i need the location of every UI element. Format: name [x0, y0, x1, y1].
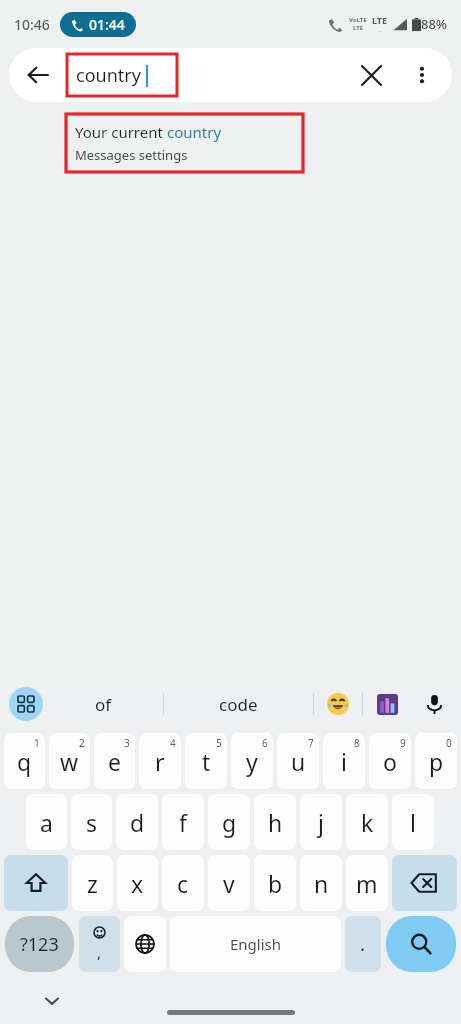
staticText: n: [314, 868, 329, 899]
button[interactable]: English: [170, 916, 341, 972]
button[interactable]: Emoji: [314, 678, 362, 730]
staticText: g: [222, 807, 237, 838]
button[interactable]: Emoji and comma: [79, 916, 120, 972]
button[interactable]: v: [208, 855, 250, 911]
button[interactable]: n: [300, 855, 342, 911]
staticText: p: [429, 746, 444, 777]
staticText: 8: [354, 736, 360, 750]
staticText: r: [155, 746, 165, 777]
button[interactable]: country: [67, 54, 177, 96]
button[interactable]: k: [346, 794, 388, 850]
button[interactable]: o: [369, 733, 411, 789]
staticText: LTE: [353, 24, 364, 32]
staticText: u: [291, 746, 306, 777]
staticText: c: [177, 868, 189, 899]
staticText: ,: [97, 942, 102, 962]
staticText: l: [410, 807, 416, 838]
staticText: j: [318, 807, 324, 838]
staticText: 01:44: [89, 15, 125, 34]
staticText: 88%: [421, 15, 447, 33]
staticText: i: [341, 746, 347, 777]
staticText: English: [230, 934, 282, 954]
button[interactable]: q: [4, 733, 45, 789]
button[interactable]: c: [162, 855, 204, 911]
staticText: VoLTE: [349, 16, 367, 24]
button[interactable]: Your current: [66, 114, 303, 172]
button[interactable]: More options: [398, 51, 446, 99]
button[interactable]: Change language: [124, 916, 166, 972]
button[interactable]: l: [392, 794, 434, 850]
staticText: d: [130, 807, 145, 838]
staticText: ..: [378, 26, 382, 34]
button[interactable]: p: [415, 733, 457, 789]
staticText: m: [356, 868, 378, 899]
staticText: e: [108, 746, 121, 777]
staticText: k: [361, 807, 374, 838]
button[interactable]: .: [345, 916, 381, 972]
button[interactable]: d: [116, 794, 158, 850]
staticText: w: [60, 746, 79, 777]
button[interactable]: a: [26, 794, 67, 850]
button[interactable]: of: [43, 678, 163, 730]
staticText: of: [95, 693, 112, 716]
button[interactable]: j: [300, 794, 342, 850]
button[interactable]: e: [94, 733, 135, 789]
staticText: q: [17, 746, 32, 777]
staticText: 9: [400, 736, 406, 750]
button[interactable]: b: [254, 855, 296, 911]
button[interactable]: i: [323, 733, 365, 789]
staticText: a: [40, 807, 53, 838]
staticText: 7: [308, 736, 314, 750]
button[interactable]: Stickers: [363, 678, 411, 730]
staticText: t: [202, 746, 211, 777]
button[interactable]: g: [208, 794, 250, 850]
staticText: y: [246, 746, 258, 777]
staticText: ?123: [20, 932, 59, 957]
staticText: b: [268, 868, 283, 899]
button[interactable]: ?123: [5, 916, 74, 972]
button[interactable]: z: [72, 855, 113, 911]
button[interactable]: Backspace: [392, 855, 457, 911]
button[interactable]: Voice input: [411, 678, 457, 730]
button[interactable]: s: [71, 794, 112, 850]
staticText: Messages settings: [75, 146, 188, 164]
staticText: LTE: [372, 14, 388, 26]
staticText: 4: [170, 736, 176, 750]
staticText: h: [268, 807, 283, 838]
staticText: country: [76, 63, 141, 88]
button[interactable]: w: [49, 733, 90, 789]
button[interactable]: Search: [386, 916, 456, 972]
button[interactable]: x: [117, 855, 158, 911]
button[interactable]: Clear: [344, 48, 398, 102]
button[interactable]: Shift: [4, 855, 68, 911]
staticText: country: [167, 122, 222, 142]
button[interactable]: y: [231, 733, 273, 789]
staticText: 2: [79, 736, 85, 750]
button[interactable]: f: [162, 794, 204, 850]
staticText: 6: [262, 736, 268, 750]
button[interactable]: m: [346, 855, 388, 911]
staticText: z: [87, 868, 98, 899]
staticText: o: [383, 746, 397, 777]
button[interactable]: Toolbar: [9, 687, 43, 721]
button[interactable]: u: [277, 733, 319, 789]
staticText: 5: [216, 736, 222, 750]
staticText: f: [179, 807, 187, 838]
staticText: v: [223, 868, 235, 899]
staticText: x: [131, 868, 144, 899]
staticText: 1: [34, 736, 40, 750]
button[interactable]: Hide keyboard: [32, 981, 72, 1021]
staticText: 10:46: [14, 15, 50, 34]
staticText: 3: [124, 736, 130, 750]
button[interactable]: h: [254, 794, 296, 850]
staticText: code: [219, 693, 258, 716]
button[interactable]: r: [139, 733, 181, 789]
staticText: s: [86, 807, 98, 838]
button[interactable]: Back: [9, 48, 67, 102]
button[interactable]: code: [164, 678, 313, 730]
staticText: Your current: [75, 122, 167, 142]
button[interactable]: t: [185, 733, 227, 789]
staticText: .: [360, 931, 366, 957]
staticText: 0: [446, 736, 452, 750]
